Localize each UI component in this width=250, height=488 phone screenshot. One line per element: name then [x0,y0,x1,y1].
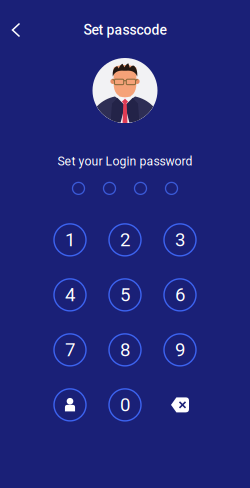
staticText: 5 [120,284,130,306]
button[interactable]: 2 [97,212,152,267]
button[interactable]: 1 [42,212,97,267]
button[interactable]: 4 [42,267,97,322]
button[interactable]: 9 [152,322,207,377]
button[interactable]: 6 [152,267,207,322]
staticText: 3 [175,229,185,251]
button[interactable]: 3 [152,212,207,267]
staticText: 9 [175,339,185,361]
staticText: Set passcode [83,22,166,38]
staticText: 6 [175,284,185,306]
button[interactable]: Back [0,14,32,46]
staticText: 8 [120,339,130,361]
button[interactable]: 5 [97,267,152,322]
button[interactable]: Biometric login [42,377,97,432]
button[interactable]: 0 [97,377,152,432]
staticText: 2 [120,229,130,251]
button[interactable]: 7 [42,322,97,377]
staticText: 1 [65,229,75,251]
button[interactable]: Delete [152,377,207,432]
staticText: Set your Login password [57,154,192,168]
staticText: 4 [65,284,75,306]
staticText: 7 [65,339,75,361]
button[interactable]: 8 [97,322,152,377]
staticText: 0 [120,394,130,416]
